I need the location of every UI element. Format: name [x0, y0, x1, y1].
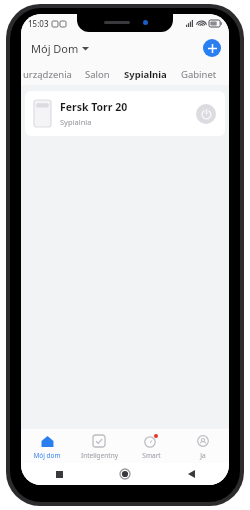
staticText: Sypialnia [124, 68, 167, 81]
staticText: urządzenia [23, 68, 72, 81]
button[interactable]: Add device [203, 39, 221, 57]
staticText: Sypialnia [60, 117, 92, 127]
staticText: Inteligentny [81, 451, 118, 460]
button[interactable]: Recents [49, 464, 69, 484]
staticText: Mój Dom [31, 41, 79, 56]
button[interactable]: Ja [177, 429, 229, 463]
staticText: 15:03 [28, 18, 49, 29]
staticText: Fersk Torr 20 [60, 100, 128, 114]
button[interactable]: Mój Dom [29, 38, 91, 59]
button[interactable]: Smart [125, 429, 177, 463]
button[interactable]: Mój dom [21, 429, 73, 463]
button[interactable]: Inteligentny [73, 429, 125, 463]
staticText: Gabinet [181, 68, 217, 81]
staticText: Mój dom [33, 451, 61, 460]
button[interactable]: Home [115, 464, 135, 484]
button[interactable]: Salon [78, 65, 117, 84]
staticText: Smart [142, 451, 161, 460]
button[interactable]: Sypialnia [117, 65, 174, 84]
staticText: Ja [200, 451, 206, 460]
button[interactable]: urządzenia [21, 65, 78, 84]
staticText: Salon [85, 68, 110, 81]
button[interactable]: Power toggle [196, 104, 216, 124]
button[interactable]: Back [181, 464, 201, 484]
button[interactable]: Fersk Torr 20 [25, 91, 225, 136]
button[interactable]: Gabinet [174, 65, 224, 84]
